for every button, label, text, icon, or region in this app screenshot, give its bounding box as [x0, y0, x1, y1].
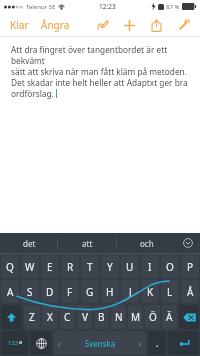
button[interactable]: P: [181, 255, 199, 278]
button[interactable]: K: [141, 280, 159, 303]
button[interactable]: A: [1, 280, 19, 303]
button[interactable]: att: [58, 233, 117, 253]
staticText: H: [106, 285, 114, 299]
staticText: Y: [107, 260, 113, 274]
button[interactable]: och: [117, 233, 176, 253]
staticText: Svenska: [61, 338, 139, 349]
staticText: Ä: [166, 310, 173, 324]
button[interactable]: C: [60, 305, 75, 329]
staticText: F: [67, 285, 73, 299]
button[interactable]: Z: [24, 305, 40, 329]
staticText: S: [27, 285, 33, 299]
staticText: Ö: [149, 310, 157, 324]
button[interactable]: R: [61, 255, 79, 278]
staticText: det: [23, 238, 36, 249]
button[interactable]: Klar: [8, 16, 31, 34]
button[interactable]: M: [128, 305, 143, 329]
button[interactable]: B: [94, 305, 109, 329]
button[interactable]: Change language: [30, 331, 52, 355]
staticText: J: [129, 285, 132, 299]
button[interactable]: F: [61, 280, 79, 303]
staticText: Ångra: [41, 18, 70, 32]
button[interactable]: T: [81, 255, 99, 278]
staticText: P: [187, 260, 194, 274]
staticText: V: [82, 310, 88, 324]
button[interactable]: Ö: [145, 305, 160, 329]
button[interactable]: Settings: [174, 16, 192, 34]
button[interactable]: Shift: [1, 305, 22, 329]
staticText: Q: [6, 260, 14, 274]
button[interactable]: Ångra: [39, 16, 72, 34]
button[interactable]: W: [21, 255, 39, 278]
staticText: Å: [187, 285, 194, 299]
staticText: Telenor SE: [26, 3, 56, 11]
button[interactable]: Add: [120, 16, 138, 34]
button[interactable]: Share: [147, 16, 165, 34]
staticText: U: [126, 260, 134, 274]
button[interactable]: S: [21, 280, 39, 303]
button[interactable]: Å: [181, 280, 199, 303]
button[interactable]: X: [42, 305, 58, 329]
staticText: ‹: [58, 338, 61, 349]
button[interactable]: H: [101, 280, 119, 303]
button[interactable]: J: [121, 280, 139, 303]
staticText: att: [82, 238, 93, 249]
button[interactable]: U: [121, 255, 139, 278]
staticText: X: [47, 310, 53, 324]
button[interactable]: Draw: [93, 16, 111, 34]
staticText: N: [115, 310, 123, 324]
button[interactable]: Backspace: [179, 305, 199, 329]
button[interactable]: .: [148, 331, 166, 355]
button[interactable]: det: [0, 233, 58, 253]
staticText: 123: [8, 339, 19, 347]
button[interactable]: I: [141, 255, 159, 278]
button[interactable]: Enter: [168, 331, 199, 355]
staticText: R: [67, 260, 74, 274]
button[interactable]: Q: [1, 255, 19, 278]
staticText: sätt att skriva när man fått kläm på met…: [11, 66, 187, 77]
staticText: E: [47, 260, 53, 274]
staticText: .: [156, 337, 159, 349]
staticText: Z: [29, 310, 35, 324]
staticText: a: [19, 339, 22, 346]
staticText: Klar: [10, 18, 29, 32]
button[interactable]: V: [77, 305, 92, 329]
button[interactable]: L: [161, 280, 179, 303]
staticText: I: [148, 260, 152, 274]
button[interactable]: Numbers: [1, 331, 28, 355]
staticText: A: [7, 285, 14, 299]
staticText: 87 %: [166, 3, 180, 11]
staticText: D: [46, 285, 54, 299]
button[interactable]: E: [41, 255, 59, 278]
staticText: M: [131, 310, 141, 324]
button[interactable]: ‹: [54, 331, 146, 355]
button[interactable]: More suggestions: [176, 233, 200, 253]
button[interactable]: Y: [101, 255, 119, 278]
staticText: Det skadar inte helt heller att Adaptxt …: [11, 77, 188, 88]
staticText: ordförslag.: [11, 88, 56, 99]
staticText: G: [86, 285, 94, 299]
staticText: B: [98, 310, 105, 324]
button[interactable]: O: [161, 255, 179, 278]
staticText: T: [87, 260, 93, 274]
staticText: W: [25, 260, 35, 274]
staticText: O: [166, 260, 174, 274]
button[interactable]: N: [111, 305, 126, 329]
staticText: C: [64, 310, 71, 324]
button[interactable]: D: [41, 280, 59, 303]
staticText: och: [140, 238, 154, 249]
staticText: 12:23: [99, 2, 116, 11]
staticText: L: [167, 285, 173, 299]
staticText: ›: [139, 338, 142, 349]
staticText: Att dra fingret över tangentbordet är et…: [11, 44, 192, 66]
button[interactable]: Ä: [162, 305, 177, 329]
staticText: K: [147, 285, 154, 299]
button[interactable]: G: [81, 280, 99, 303]
